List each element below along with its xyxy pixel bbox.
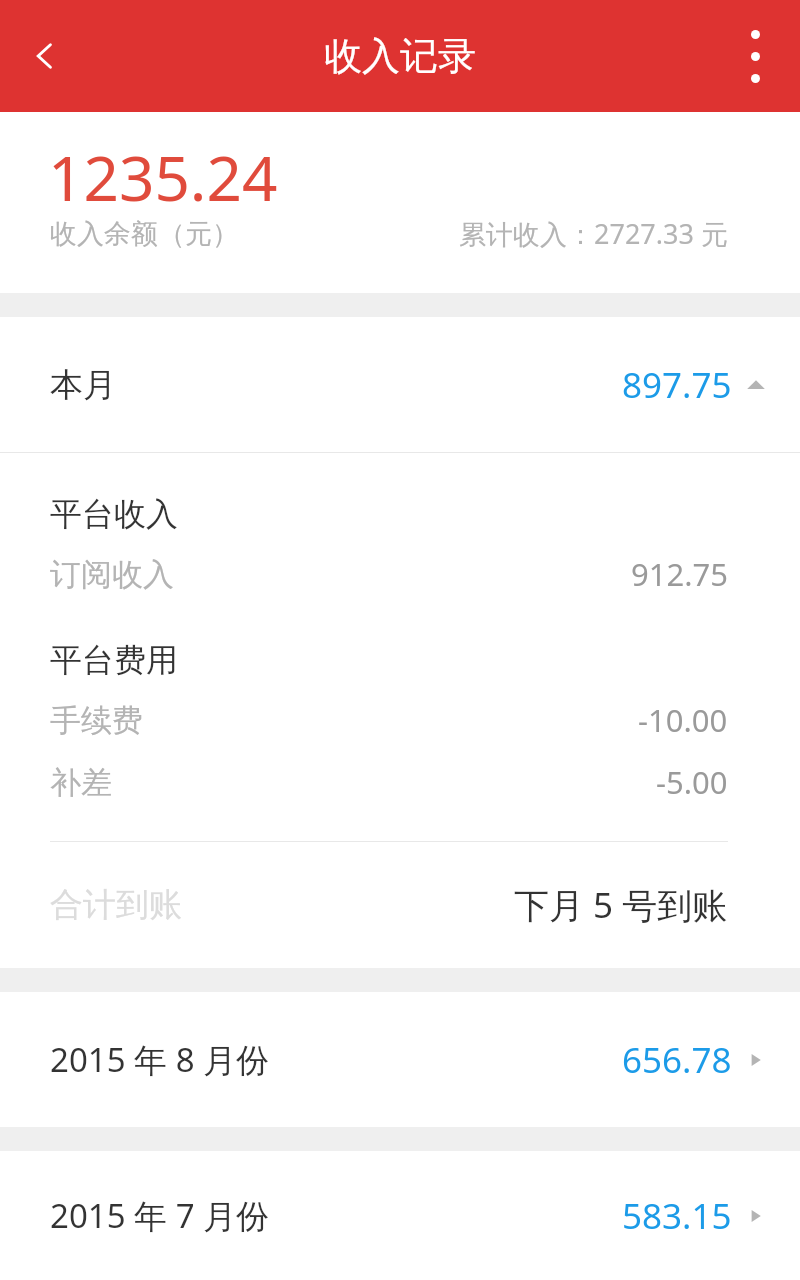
staticText: -10.00: [638, 699, 728, 741]
staticText: 583.15: [622, 1192, 732, 1240]
button[interactable]: 2015 年 8 月份: [0, 992, 800, 1127]
staticText: 收入记录: [324, 32, 476, 80]
button[interactable]: 2015 年 7 月份: [0, 1151, 800, 1280]
staticText: 下月 5 号到账: [514, 881, 728, 929]
staticText: 897.75: [622, 361, 732, 409]
staticText: 2015 年 8 月份: [50, 1037, 270, 1082]
button[interactable]: More options: [710, 0, 800, 112]
staticText: 912.75: [631, 553, 728, 595]
staticText: 平台收入: [50, 494, 178, 534]
staticText: 1235.24: [48, 135, 278, 219]
staticText: 2015 年 7 月份: [50, 1193, 270, 1238]
staticText: 合计到账: [50, 884, 182, 926]
staticText: 累计收入：2727.33 元: [459, 215, 728, 252]
staticText: 收入余额（元）: [50, 217, 239, 251]
staticText: 手续费: [50, 701, 143, 740]
staticText: 平台费用: [50, 640, 178, 680]
staticText: 656.78: [622, 1036, 732, 1084]
staticText: 本月: [50, 364, 116, 406]
staticText: 补差: [50, 763, 112, 802]
button[interactable]: Back: [0, 0, 90, 112]
button[interactable]: 本月: [0, 317, 800, 452]
staticText: -5.00: [656, 761, 728, 803]
staticText: 订阅收入: [50, 555, 174, 594]
